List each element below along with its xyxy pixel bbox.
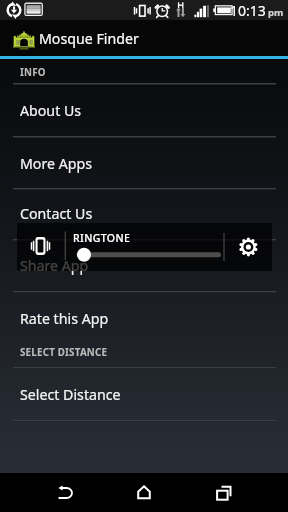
staticText: More Apps xyxy=(20,154,93,173)
staticText: About Us xyxy=(20,101,82,120)
staticText: INFO xyxy=(20,66,46,79)
staticText: Share App xyxy=(20,256,89,275)
button[interactable]: Contact Us xyxy=(0,188,288,239)
staticText: RINGTONE xyxy=(73,231,131,245)
button[interactable]: About Us xyxy=(0,84,288,137)
staticText: Select Distance xyxy=(20,385,121,404)
button[interactable]: Back xyxy=(46,473,84,512)
staticText: 10:13 xyxy=(230,1,266,20)
staticText: pm xyxy=(268,6,284,19)
button[interactable]: More Apps xyxy=(0,137,288,189)
staticText: Mosque Finder xyxy=(39,29,139,48)
button[interactable]: Share App xyxy=(0,239,288,292)
button[interactable]: RINGTONE xyxy=(17,223,272,271)
button[interactable]: Rate this App xyxy=(0,292,288,344)
button[interactable]: Select Distance xyxy=(0,367,288,421)
staticText: Rate this App xyxy=(20,309,109,328)
staticText: SELECT DISTANCE xyxy=(20,346,108,359)
button[interactable]: Recent apps xyxy=(205,473,243,512)
button[interactable]: Home xyxy=(125,473,163,512)
staticText: Contact Us xyxy=(20,204,93,223)
